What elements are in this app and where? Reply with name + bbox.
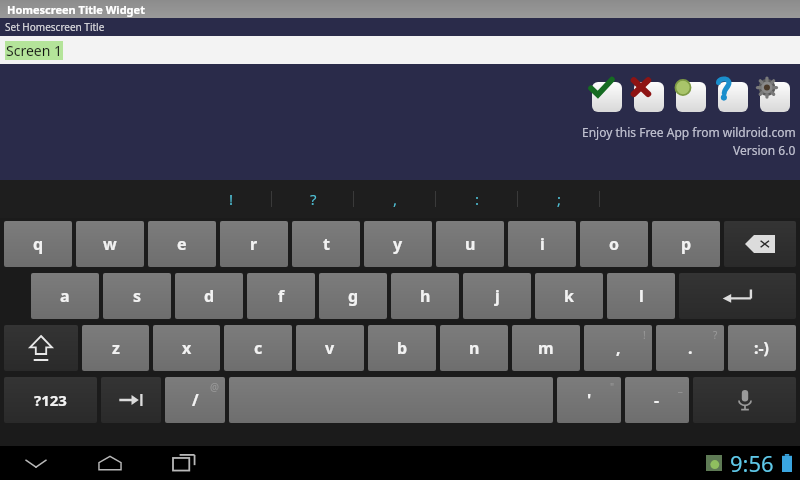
button[interactable]: l (607, 273, 675, 319)
staticText: x (182, 337, 192, 359)
staticText: Screen 1 (6, 41, 62, 60)
button[interactable]: Settings (754, 76, 790, 112)
button[interactable]: i (508, 221, 576, 267)
button[interactable]: Space (229, 377, 553, 423)
button[interactable]: y (364, 221, 432, 267)
staticText: Homescreen Title Widget (7, 2, 145, 17)
button[interactable]: Help (712, 76, 748, 112)
button[interactable]: Save (586, 76, 622, 112)
staticText: p (681, 233, 692, 255)
button[interactable]: j (463, 273, 531, 319)
staticText: r (250, 233, 258, 255)
staticText: : (475, 189, 480, 209)
staticText: ! (643, 328, 646, 342)
staticText: ' (587, 389, 592, 411)
staticText: ?123 (34, 390, 67, 410)
staticText: e (177, 233, 187, 255)
staticText: h (420, 285, 431, 307)
button[interactable]: q (4, 221, 72, 267)
button[interactable]: s (103, 273, 171, 319)
staticText: s (133, 285, 142, 307)
staticText: Version 6.0 (733, 142, 796, 158)
staticText: l (639, 285, 644, 307)
staticText: v (325, 337, 335, 359)
staticText: . (688, 337, 693, 359)
button[interactable]: - (625, 377, 689, 423)
staticText: w (103, 233, 117, 255)
button[interactable]: b (368, 325, 436, 371)
button[interactable]: ! (190, 180, 272, 218)
button[interactable]: Recent apps (162, 446, 206, 480)
staticText: f (278, 285, 285, 307)
button[interactable]: ? (272, 180, 354, 218)
button[interactable]: Shift (4, 325, 78, 371)
button[interactable]: Voice input (693, 377, 796, 423)
button[interactable]: w (76, 221, 144, 267)
button[interactable]: Cancel (628, 76, 664, 112)
button[interactable]: z (82, 325, 149, 371)
button[interactable]: u (436, 221, 504, 267)
button[interactable]: Screen 1 (0, 36, 800, 64)
staticText: m (538, 337, 554, 359)
button[interactable]: Hide keyboard (14, 446, 58, 480)
button[interactable]: r (220, 221, 288, 267)
staticText: _ (678, 380, 683, 394)
staticText: g (348, 285, 359, 307)
staticText: - (654, 389, 660, 411)
button[interactable]: Enter (679, 273, 796, 319)
staticText: c (254, 337, 263, 359)
button[interactable]: ' (557, 377, 621, 423)
staticText: y (393, 233, 403, 255)
button[interactable]: o (580, 221, 648, 267)
button[interactable]: Info (670, 76, 706, 112)
button[interactable]: p (652, 221, 720, 267)
staticText: / (192, 389, 199, 411)
button[interactable]: e (148, 221, 216, 267)
button[interactable]: Symbols (4, 377, 97, 423)
button[interactable]: :-) (728, 325, 796, 371)
button[interactable]: t (292, 221, 360, 267)
button[interactable]: ; (518, 180, 600, 218)
button[interactable]: k (535, 273, 603, 319)
button[interactable]: , (584, 325, 652, 371)
button[interactable]: : (436, 180, 518, 218)
button[interactable]: m (512, 325, 580, 371)
staticText: @ (210, 380, 219, 394)
staticText: b (397, 337, 408, 359)
button[interactable]: Delete (724, 221, 796, 267)
button[interactable]: a (31, 273, 99, 319)
button[interactable]: d (175, 273, 243, 319)
staticText: z (112, 337, 120, 359)
staticText: :-) (754, 337, 770, 359)
button[interactable]: Tab (101, 377, 161, 423)
staticText: " (610, 380, 615, 394)
staticText: , (393, 189, 398, 209)
button[interactable]: h (391, 273, 459, 319)
button[interactable]: x (153, 325, 220, 371)
staticText: 9:56 (730, 448, 774, 478)
button[interactable]: n (440, 325, 508, 371)
staticText: j (495, 285, 500, 307)
staticText: k (564, 285, 574, 307)
staticText: Enjoy this Free App from wildroid.com (582, 124, 796, 140)
staticText: ? (310, 189, 317, 209)
staticText: n (469, 337, 480, 359)
staticText: d (204, 285, 215, 307)
button[interactable]: / (165, 377, 225, 423)
button[interactable]: , (354, 180, 436, 218)
staticText: Set Homescreen Title (5, 20, 105, 34)
staticText: ? (713, 328, 718, 342)
staticText: q (33, 233, 44, 255)
button[interactable]: v (296, 325, 364, 371)
button[interactable]: c (224, 325, 292, 371)
button[interactable]: . (656, 325, 724, 371)
button[interactable]: g (319, 273, 387, 319)
staticText: , (616, 337, 621, 359)
button[interactable]: Home (88, 446, 132, 480)
staticText: i (540, 233, 545, 255)
button[interactable]: f (247, 273, 315, 319)
staticText: t (323, 233, 330, 255)
staticText: u (465, 233, 476, 255)
staticText: ; (557, 189, 562, 209)
staticText: o (609, 233, 620, 255)
